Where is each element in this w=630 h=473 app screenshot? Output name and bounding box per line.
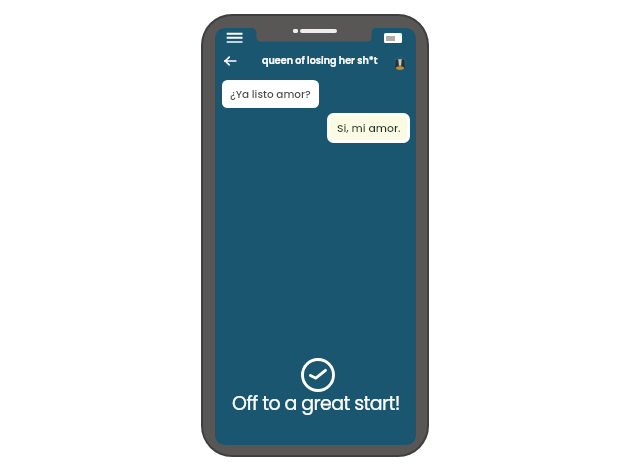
button[interactable]: Si, mi amor.	[330, 116, 407, 140]
button[interactable]: Open navigation menu	[221, 28, 251, 50]
button[interactable]: ¿Ya listo amor?	[222, 80, 319, 108]
button[interactable]: Contact profile	[393, 56, 407, 70]
staticText: Off to a great start!	[232, 390, 400, 417]
staticText: queen of losing her sh*t	[262, 54, 378, 67]
staticText: ¿Ya listo amor?	[230, 87, 311, 102]
staticText: Si, mi amor.	[337, 121, 401, 136]
button[interactable]: Back	[218, 52, 242, 70]
